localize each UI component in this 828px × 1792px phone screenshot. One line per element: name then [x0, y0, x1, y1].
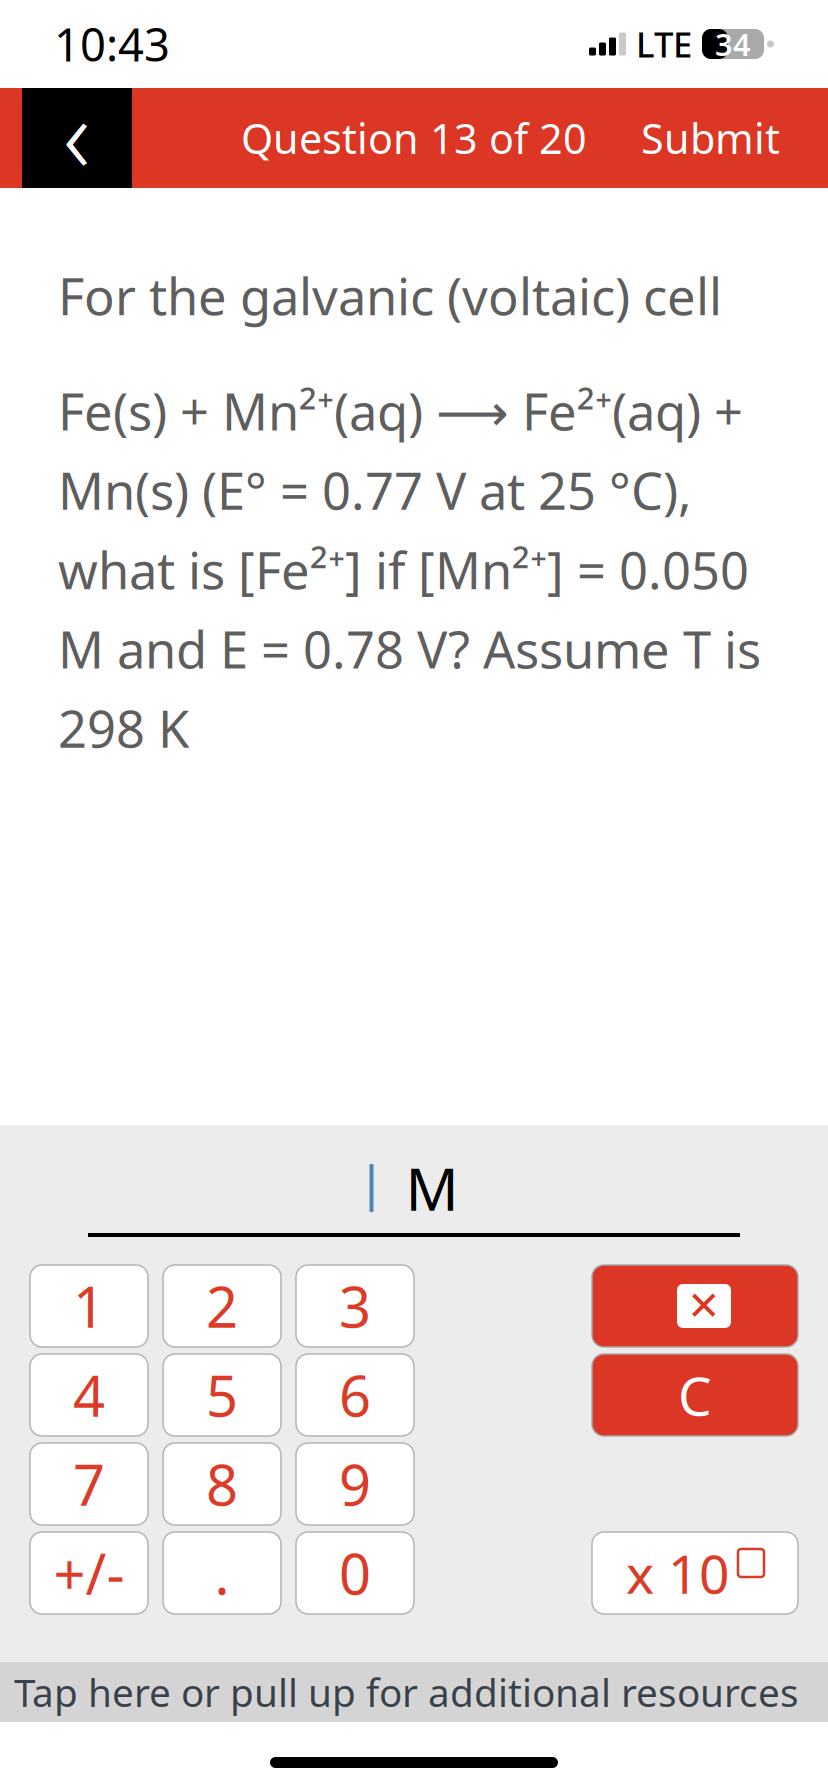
staticText: ✕ [687, 1283, 721, 1329]
button[interactable]: 4 [30, 1354, 148, 1436]
button[interactable]: 0 [296, 1532, 414, 1614]
button[interactable]: . [163, 1532, 281, 1614]
staticText: 34 [715, 24, 751, 64]
button[interactable]: 9 [296, 1443, 414, 1525]
staticText: 5 [206, 1358, 238, 1432]
staticText: C [678, 1360, 712, 1430]
button[interactable]: 6 [296, 1354, 414, 1436]
button[interactable]: 5 [163, 1354, 281, 1436]
staticText: 8 [206, 1447, 238, 1521]
button[interactable]: C [592, 1354, 798, 1436]
staticText: Question 13 of 20 [241, 111, 587, 165]
staticText: 7 [73, 1447, 105, 1521]
button[interactable]: 1 [30, 1265, 148, 1347]
staticText: Tap here or pull up for additional resou… [14, 1666, 799, 1718]
staticText: ‹ [63, 64, 91, 202]
staticText: 0 [339, 1536, 371, 1610]
staticText: LTE [636, 21, 692, 67]
staticText: 3 [339, 1269, 371, 1343]
staticText: Submit [641, 111, 780, 165]
staticText: For the galvanic (voltaic) cell [58, 262, 722, 329]
staticText: 2 [206, 1269, 238, 1343]
button[interactable]: 2 [163, 1265, 281, 1347]
staticText: 1 [73, 1269, 105, 1343]
staticText: 9 [339, 1447, 371, 1521]
button[interactable]: +/- [30, 1532, 148, 1614]
button[interactable]: 8 [163, 1443, 281, 1525]
button[interactable]: 7 [30, 1443, 148, 1525]
staticText: +/- [53, 1536, 124, 1610]
staticText: 6 [339, 1358, 371, 1432]
staticText: M [405, 1149, 458, 1227]
button[interactable]: Submit [615, 88, 806, 188]
button[interactable]: Tap here or pull up for additional resou… [0, 1662, 828, 1722]
staticText: Fe(s) + Mn²⁺(aq) ⟶ Fe²⁺(aq) + Mn(s) (E° … [58, 377, 761, 762]
staticText: x 10 [626, 1538, 730, 1608]
button[interactable]: 3 [296, 1265, 414, 1347]
button[interactable]: Delete [592, 1265, 798, 1347]
staticText: . [214, 1536, 229, 1610]
staticText: 4 [73, 1358, 105, 1432]
button[interactable]: Times ten to the power [592, 1532, 798, 1614]
staticText: 10:43 [54, 14, 170, 74]
button[interactable]: Back [22, 88, 132, 188]
